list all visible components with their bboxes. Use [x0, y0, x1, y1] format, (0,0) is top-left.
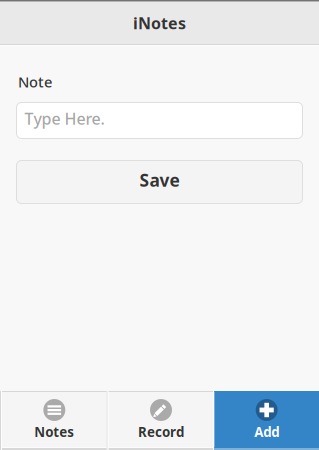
staticText: Note	[18, 72, 52, 91]
staticText: iNotes	[133, 12, 186, 34]
staticText: Notes	[34, 423, 74, 441]
button[interactable]: Save	[16, 160, 302, 203]
button[interactable]: Add	[214, 391, 319, 450]
staticText: Save	[139, 168, 179, 191]
staticText: Type Here.	[24, 108, 104, 129]
button[interactable]: Record	[109, 391, 213, 450]
staticText: Add	[254, 423, 279, 441]
staticText: Record	[138, 423, 184, 441]
button[interactable]: Notes	[2, 391, 107, 450]
